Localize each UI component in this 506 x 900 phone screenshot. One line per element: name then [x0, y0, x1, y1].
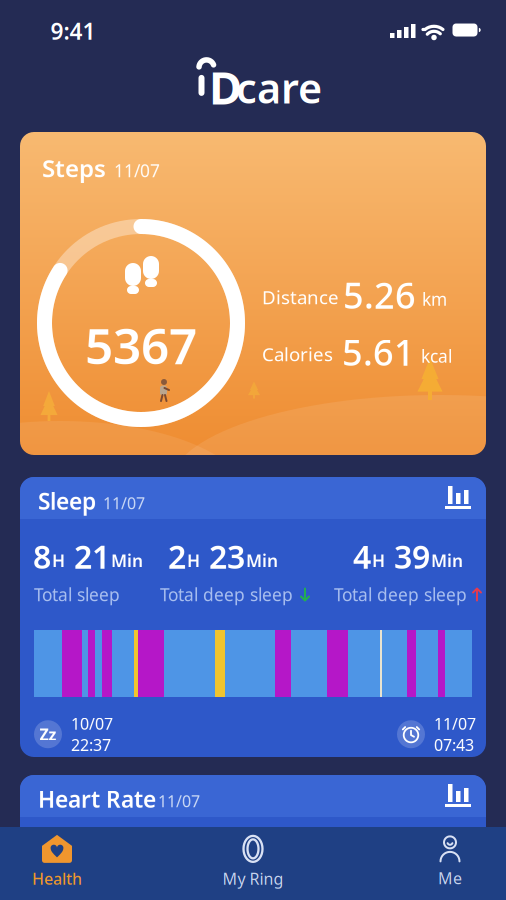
staticText: Steps	[42, 152, 106, 184]
staticText: km	[422, 287, 447, 310]
staticText: 11/07	[434, 713, 476, 734]
staticText: 5.26	[343, 271, 416, 319]
staticText: Total sleep	[34, 583, 120, 606]
staticText: care	[236, 60, 322, 115]
staticText: 21	[66, 535, 110, 577]
button[interactable]: My Ring	[169, 829, 337, 895]
staticText: Min	[111, 549, 143, 572]
staticText: 5367	[85, 312, 197, 378]
staticText: Zz	[39, 724, 56, 745]
staticText: Heart Rate	[38, 784, 156, 814]
staticText: 07:43	[434, 734, 474, 755]
staticText: 11/07	[158, 790, 200, 812]
staticText: Calories	[262, 341, 333, 366]
staticText: Sleep	[38, 486, 96, 516]
staticText: 11/07	[103, 492, 145, 514]
staticText: 8	[33, 535, 51, 577]
staticText: Min	[431, 549, 463, 572]
staticText: 5.61	[342, 328, 415, 376]
staticText: H	[52, 549, 65, 572]
staticText: 9:41	[50, 16, 95, 46]
staticText: D	[209, 57, 242, 117]
staticText: 4	[353, 535, 371, 577]
staticText: Me	[438, 867, 462, 889]
button[interactable]: Health	[0, 829, 141, 895]
staticText: Total deep sleep	[160, 583, 293, 606]
staticText: H	[372, 549, 385, 572]
button[interactable]: Heart Rate	[20, 775, 486, 900]
staticText: 11/07	[114, 159, 160, 182]
staticText: 22:37	[71, 734, 111, 755]
button[interactable]: Sleep chart	[445, 485, 471, 509]
staticText: My Ring	[222, 868, 283, 889]
button[interactable]: Me	[366, 829, 506, 895]
button[interactable]: Sleep	[20, 477, 486, 757]
staticText: 2	[168, 535, 186, 577]
staticText: Total deep sleep	[334, 583, 467, 606]
staticText: Distance	[262, 284, 339, 309]
button[interactable]: 5367	[20, 132, 486, 455]
staticText: 39	[386, 535, 430, 577]
staticText: H	[187, 549, 200, 572]
staticText: 23	[201, 535, 245, 577]
staticText: 10/07	[71, 713, 113, 734]
staticText: kcal	[421, 344, 452, 367]
staticText: Min	[246, 549, 278, 572]
button[interactable]: Heart rate chart	[445, 783, 471, 807]
staticText: Health	[32, 868, 82, 889]
